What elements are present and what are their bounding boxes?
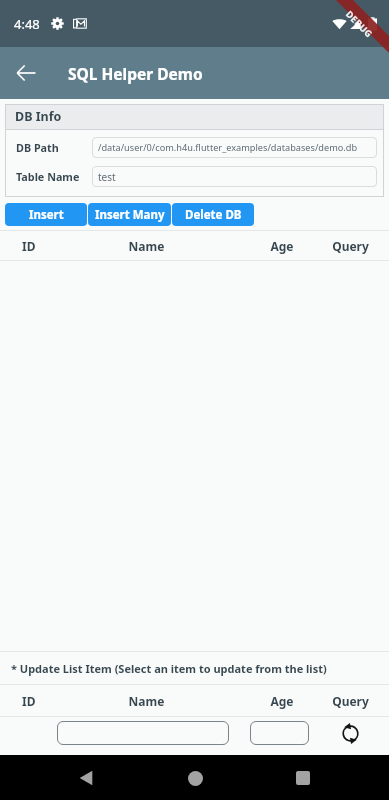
- staticText: SQL Helper Demo: [68, 63, 203, 84]
- staticText: * Update List Item (Select an item to up…: [11, 661, 327, 676]
- button[interactable]: [57, 721, 229, 745]
- staticText: Table Name: [16, 169, 92, 184]
- staticText: Name: [45, 693, 248, 709]
- staticText: DB Info: [15, 108, 62, 125]
- staticText: Delete DB: [185, 207, 242, 223]
- button[interactable]: Back: [64, 756, 108, 800]
- staticText: Age: [248, 693, 316, 709]
- button[interactable]: Home: [173, 756, 217, 800]
- staticText: 4:48: [14, 15, 40, 33]
- staticText: Age: [248, 238, 316, 254]
- staticText: Query: [316, 693, 385, 709]
- staticText: Query: [316, 238, 385, 254]
- button[interactable]: Refresh: [335, 718, 365, 748]
- staticText: ID: [22, 238, 45, 254]
- button[interactable]: Recent apps: [281, 756, 325, 800]
- staticText: DB Path: [16, 140, 92, 155]
- button[interactable]: Insert: [5, 203, 87, 226]
- staticText: ID: [22, 693, 45, 709]
- button[interactable]: Back: [0, 47, 52, 99]
- staticText: /data/user/0/com.h4u.flutter_examples/da…: [98, 141, 358, 154]
- staticText: Name: [45, 238, 248, 254]
- button[interactable]: Insert Many: [88, 203, 171, 226]
- staticText: Insert: [29, 207, 64, 223]
- button[interactable]: [250, 721, 309, 745]
- staticText: Insert Many: [95, 207, 165, 223]
- staticText: DEBUG: [344, 8, 376, 40]
- button[interactable]: Delete DB: [172, 203, 254, 226]
- staticText: test: [98, 170, 116, 184]
